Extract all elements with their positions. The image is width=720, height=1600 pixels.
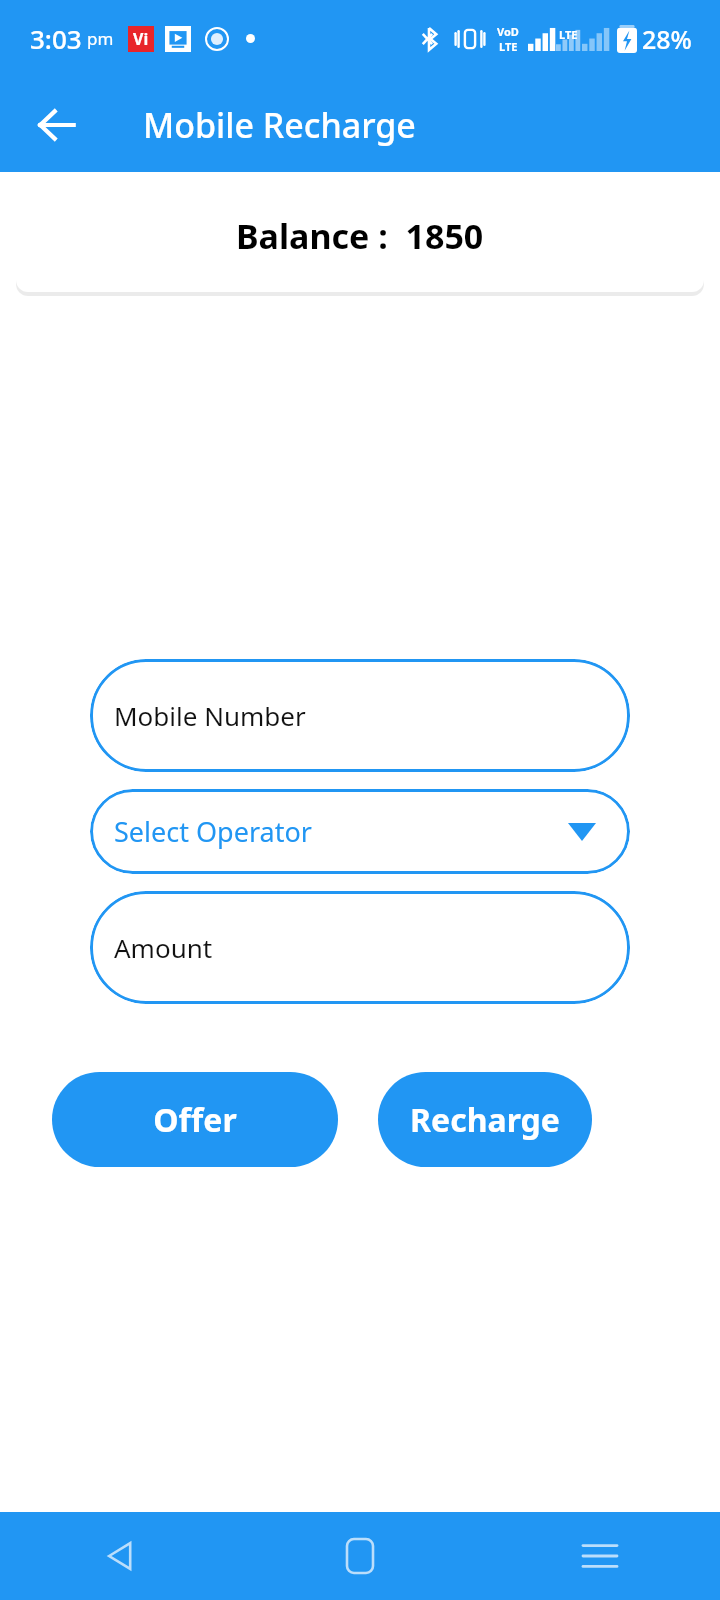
button[interactable]: Recent apps (480, 1512, 720, 1600)
staticText: Select Operator (114, 813, 312, 850)
staticText: VoD (497, 24, 519, 39)
staticText: Offer (153, 1098, 237, 1142)
button[interactable]: Back (24, 92, 90, 158)
staticText: Mobile Number (114, 698, 306, 733)
staticText: 3:03 (30, 21, 82, 56)
staticText: Recharge (410, 1098, 560, 1142)
staticText: 28% (642, 22, 692, 56)
button[interactable]: Amount (90, 891, 630, 1004)
staticText: Balance : 1850 (236, 213, 484, 259)
button[interactable]: Recharge (378, 1072, 592, 1167)
button[interactable]: Back (0, 1512, 240, 1600)
staticText: Amount (114, 930, 213, 965)
staticText: Vi (133, 28, 149, 50)
staticText: pm (87, 27, 114, 50)
staticText: LTE (559, 27, 578, 42)
button[interactable]: Home (240, 1512, 480, 1600)
button[interactable]: Balance : 1850 (16, 180, 704, 292)
staticText: Mobile Recharge (143, 102, 416, 148)
button[interactable]: Offer (52, 1072, 338, 1167)
staticText: LTE (499, 39, 518, 54)
button[interactable]: Mobile Number (90, 659, 630, 772)
button[interactable]: Select Operator (90, 789, 630, 874)
